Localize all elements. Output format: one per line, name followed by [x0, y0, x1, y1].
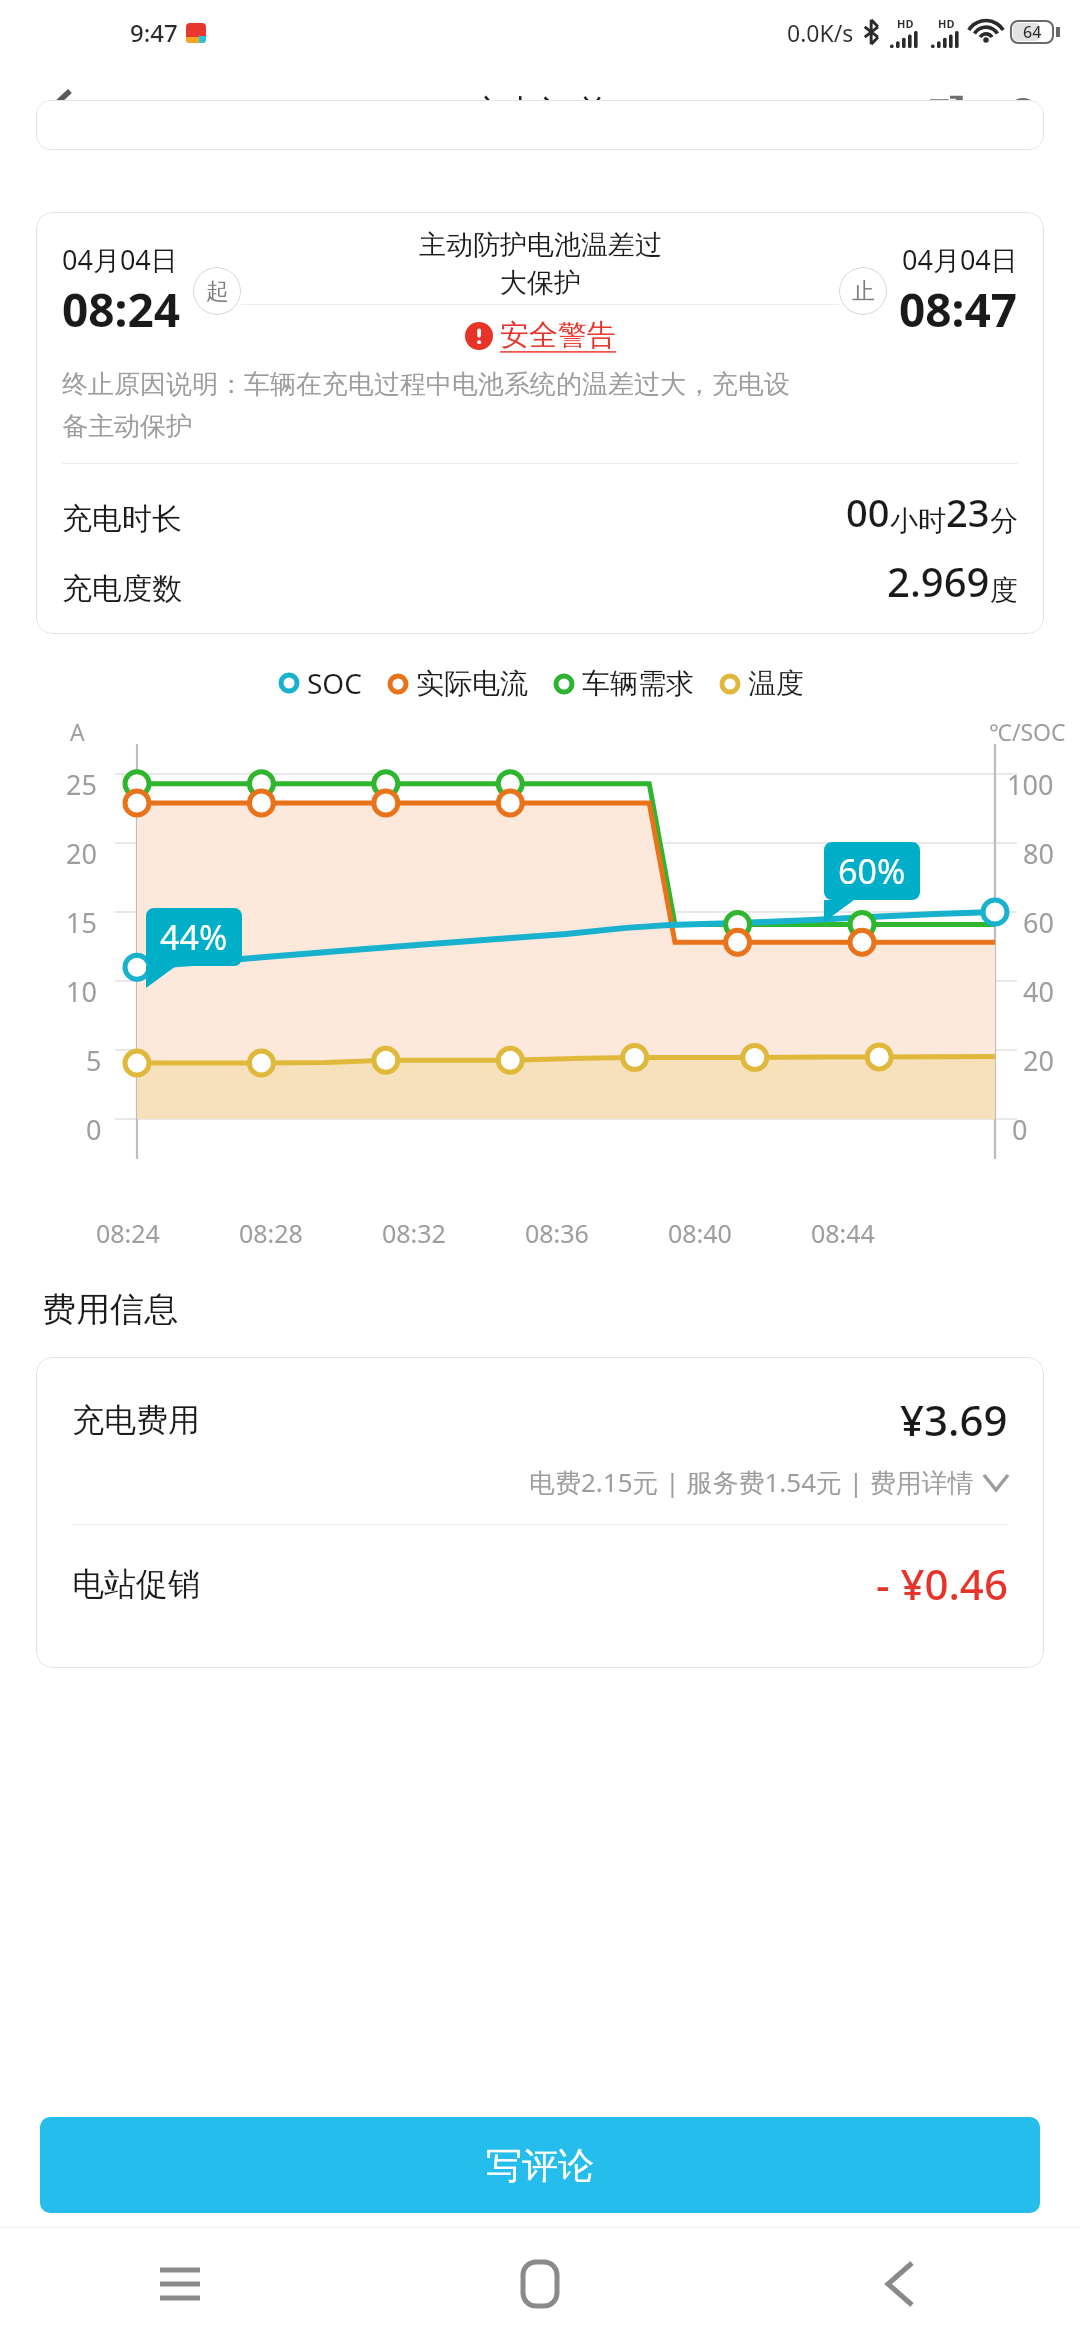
- button[interactable]: 电费2.15元 | 服务费1.54元 | 费用详情: [72, 1464, 1008, 1500]
- staticText: HD: [897, 16, 914, 31]
- staticText: HD: [938, 16, 955, 31]
- staticText: 小时: [890, 503, 946, 538]
- staticText: 08:28: [239, 1216, 303, 1250]
- staticText: 2.969: [887, 554, 990, 608]
- staticText: ℃/SOC: [989, 716, 1066, 747]
- staticText: 25: [66, 766, 97, 803]
- staticText: 5: [86, 1042, 102, 1079]
- staticText: 充电度数: [62, 570, 182, 608]
- staticText: 04月04日: [902, 241, 1018, 278]
- staticText: 20: [1023, 1042, 1054, 1079]
- staticText: 度: [990, 573, 1018, 608]
- button[interactable]: Home: [360, 2228, 720, 2340]
- button[interactable]: Share: [912, 80, 978, 146]
- staticText: 电站促销: [72, 1564, 200, 1604]
- staticText: 08:24: [96, 1216, 160, 1250]
- staticText: 60%: [838, 848, 906, 894]
- staticText: 9:47: [130, 16, 178, 49]
- staticText: 44%: [160, 914, 228, 960]
- staticText: 60: [1023, 904, 1054, 941]
- staticText: 充电费用: [72, 1400, 200, 1440]
- staticText: A: [70, 716, 85, 747]
- button[interactable]: 写评论: [40, 2117, 1040, 2213]
- staticText: - ¥0.46: [876, 1555, 1008, 1612]
- staticText: 费用信息: [42, 1288, 178, 1331]
- button[interactable]: Customer service: [990, 80, 1056, 146]
- staticText: 0: [86, 1111, 102, 1148]
- staticText: 安全警告: [500, 317, 616, 354]
- staticText: 0: [1012, 1111, 1028, 1148]
- staticText: 分: [990, 503, 1018, 538]
- staticText: 64: [1023, 21, 1042, 43]
- staticText: SOC: [307, 664, 362, 702]
- staticText: 0.0K/s: [787, 17, 854, 48]
- staticText: 车辆需求: [582, 666, 694, 701]
- staticText: 电费2.15元 | 服务费1.54元 | 费用详情: [529, 1464, 974, 1500]
- staticText: ¥3.69: [900, 1391, 1008, 1448]
- button[interactable]: Recents: [0, 2228, 360, 2340]
- staticText: 08:32: [382, 1216, 446, 1250]
- staticText: 08:44: [811, 1216, 875, 1250]
- button[interactable]: 04月04日: [36, 212, 1044, 634]
- staticText: 40: [1023, 973, 1054, 1010]
- button[interactable]: 安全警告: [465, 317, 616, 354]
- staticText: 20: [66, 835, 97, 872]
- staticText: 充电时长: [62, 500, 182, 538]
- staticText: 100: [1007, 766, 1054, 803]
- staticText: 08:47: [899, 278, 1018, 341]
- staticText: 23: [946, 486, 990, 538]
- staticText: 00: [846, 486, 890, 538]
- staticText: 温度: [748, 666, 804, 701]
- button[interactable]: Back: [22, 77, 94, 149]
- staticText: 04月04日: [62, 241, 178, 278]
- button[interactable]: Back: [720, 2228, 1080, 2340]
- staticText: 起: [206, 277, 229, 306]
- staticText: 08:24: [62, 278, 181, 341]
- staticText: 主动防护电池温差过 大保护: [419, 228, 662, 300]
- staticText: 15: [66, 904, 97, 941]
- staticText: 08:36: [525, 1216, 589, 1250]
- staticText: 实际电流: [416, 666, 528, 701]
- staticText: 写评论: [486, 2143, 594, 2188]
- staticText: 止: [852, 277, 875, 306]
- staticText: 80: [1023, 835, 1054, 872]
- staticText: 终止原因说明：车辆在充电过程中电池系统的温差过大，充电设 备主动保护: [62, 368, 790, 443]
- staticText: 08:40: [668, 1216, 732, 1250]
- staticText: 10: [66, 973, 97, 1010]
- staticText: 充电订单: [470, 91, 610, 135]
